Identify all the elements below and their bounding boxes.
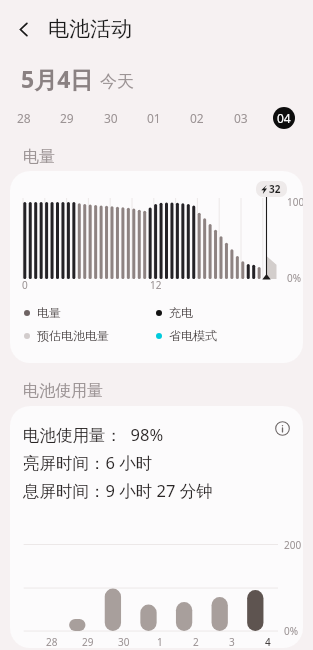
button[interactable]: Back	[5, 11, 41, 47]
staticText: 0%	[287, 271, 302, 285]
staticText: 29	[60, 110, 74, 126]
staticText: 4	[265, 635, 271, 648]
staticText: 12	[150, 278, 162, 292]
button[interactable]: 29	[56, 107, 78, 129]
staticText: 01	[147, 110, 161, 126]
staticText: 0%	[284, 624, 299, 638]
staticText: 200	[284, 538, 302, 552]
button[interactable]: 01	[143, 107, 165, 129]
button[interactable]: Info	[272, 418, 292, 438]
staticText: 03	[234, 110, 248, 126]
staticText: 30	[104, 110, 118, 126]
staticText: 电池使用量	[23, 381, 103, 401]
staticText: 电量	[37, 305, 61, 320]
staticText: 电池活动	[48, 16, 132, 42]
staticText: 今天	[100, 71, 134, 92]
staticText: 预估电池电量	[37, 328, 109, 343]
staticText: 30	[118, 635, 130, 648]
staticText: 04	[277, 110, 291, 126]
staticText: 电量	[23, 147, 55, 167]
staticText: 充电	[169, 305, 193, 320]
button[interactable]: 02	[186, 107, 208, 129]
staticText: 1	[157, 635, 163, 648]
button[interactable]: 28	[13, 107, 35, 129]
staticText: 3	[229, 635, 235, 648]
staticText: 亮屏时间：6 小时	[23, 451, 153, 474]
button[interactable]: 04	[273, 107, 295, 129]
staticText: 100	[287, 195, 303, 209]
staticText: 电池使用量： 98%	[23, 423, 164, 446]
staticText: 5月4日	[21, 63, 94, 94]
staticText: 息屏时间：9 小时 27 分钟	[23, 479, 213, 502]
button[interactable]: 30	[100, 107, 122, 129]
button[interactable]: 03	[230, 107, 252, 129]
staticText: 0	[22, 278, 28, 292]
staticText: 28	[46, 635, 58, 648]
staticText: 02	[190, 110, 204, 126]
staticText: 29	[82, 635, 94, 648]
staticText: 省电模式	[169, 328, 217, 343]
staticText: 32	[269, 182, 281, 196]
staticText: 2	[193, 635, 199, 648]
staticText: 28	[17, 110, 31, 126]
